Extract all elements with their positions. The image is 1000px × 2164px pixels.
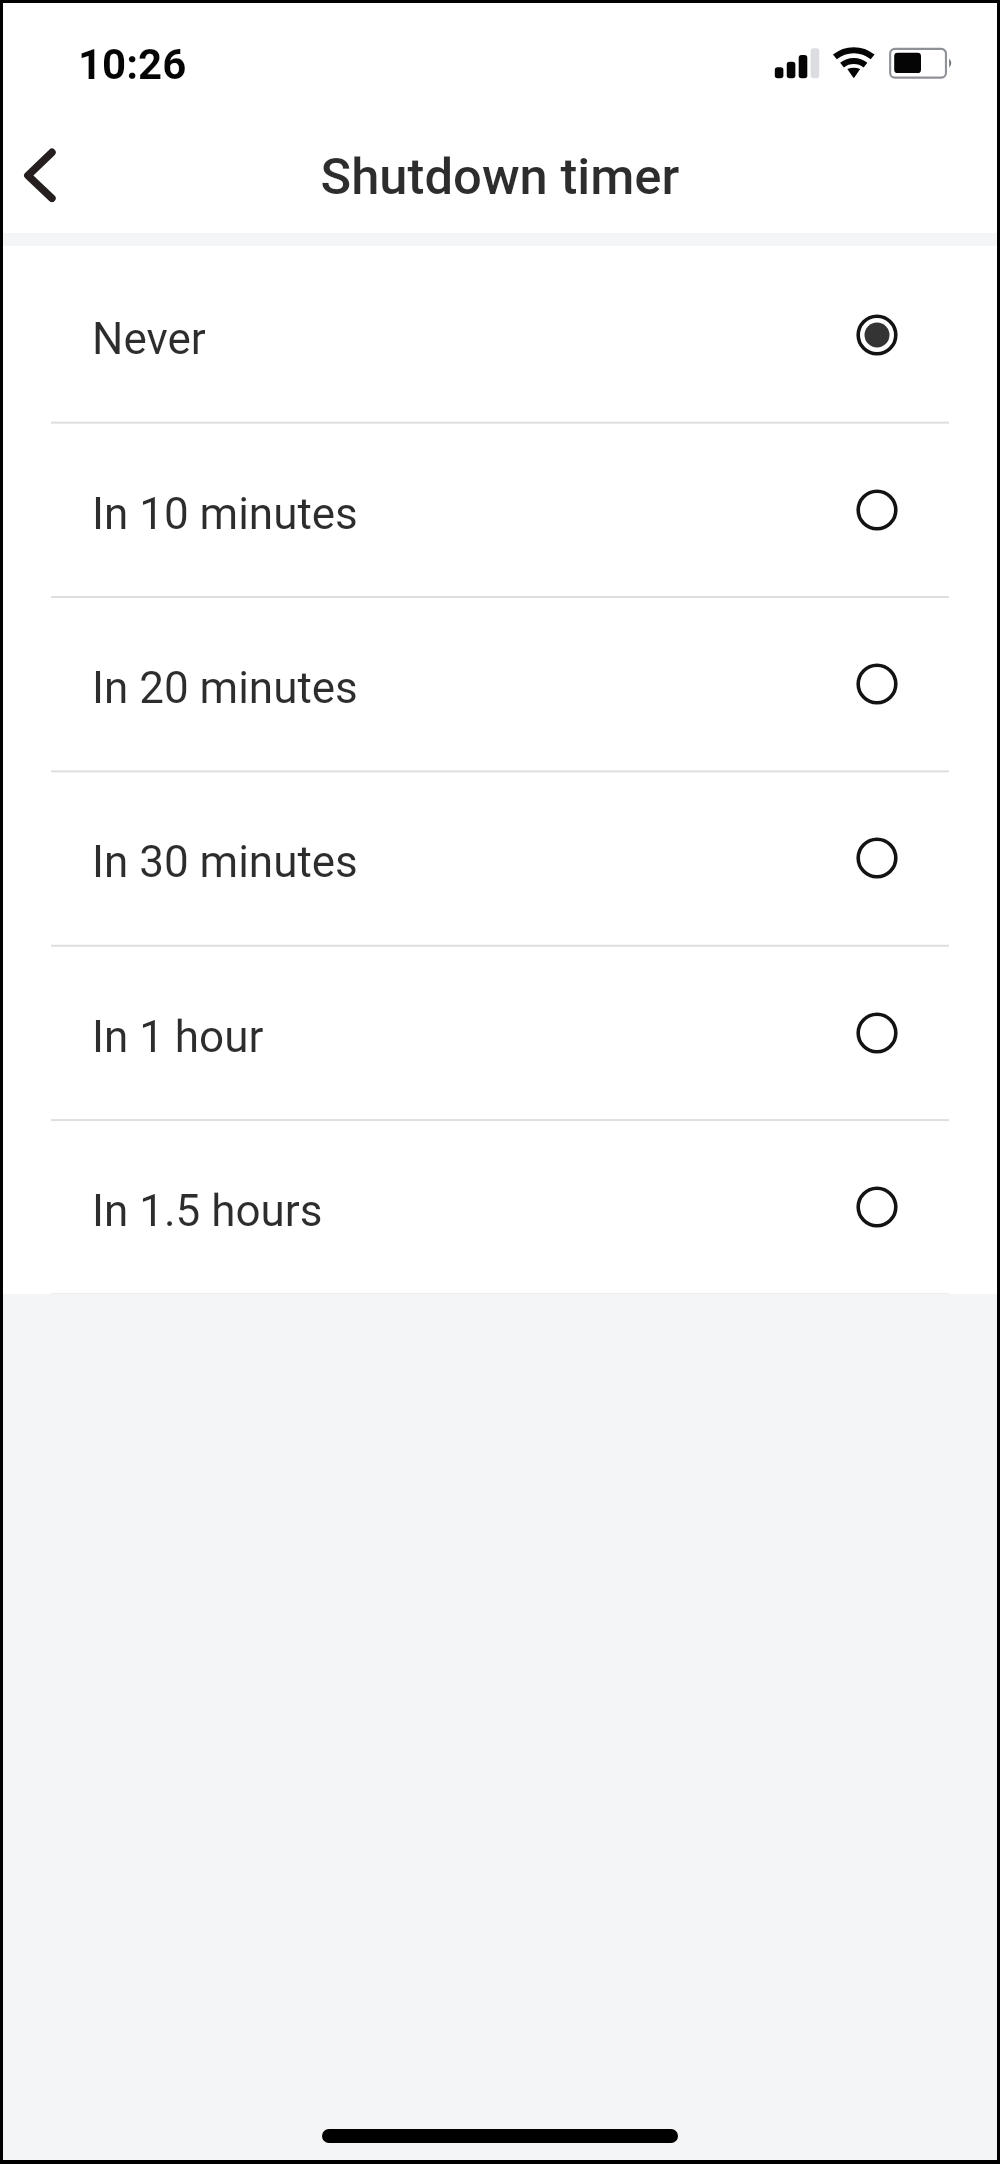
button[interactable]: In 20 minutes — [3, 597, 997, 771]
button[interactable]: In 10 minutes — [3, 423, 997, 597]
staticText: In 30 minutes — [92, 836, 358, 888]
button[interactable]: Back — [3, 117, 103, 233]
button[interactable]: Never — [3, 248, 997, 422]
button[interactable]: In 1.5 hours — [3, 1120, 997, 1294]
staticText: In 1.5 hours — [92, 1185, 323, 1237]
staticText: Never — [92, 313, 206, 365]
button[interactable]: In 1 hour — [3, 946, 997, 1120]
staticText: 10:26 — [78, 40, 187, 89]
staticText: Shutdown timer — [3, 147, 997, 206]
button[interactable]: In 30 minutes — [3, 771, 997, 945]
staticText: In 20 minutes — [92, 662, 358, 714]
staticText: In 1 hour — [92, 1011, 264, 1063]
staticText: In 10 minutes — [92, 488, 358, 540]
